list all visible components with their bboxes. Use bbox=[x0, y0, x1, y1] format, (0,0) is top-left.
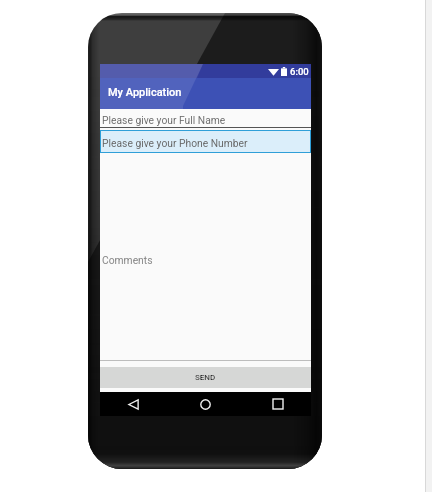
button[interactable]: Please give your Full Name bbox=[100, 109, 311, 128]
button[interactable]: Please give your Phone Number bbox=[100, 130, 311, 153]
button[interactable]: Comments bbox=[100, 153, 311, 360]
button[interactable]: Recent apps bbox=[264, 392, 292, 416]
staticText: My Application bbox=[108, 86, 182, 99]
button[interactable]: Back bbox=[119, 392, 147, 416]
staticText: 6:00 bbox=[290, 66, 309, 77]
button[interactable]: Home bbox=[191, 392, 219, 416]
staticText: SEND bbox=[195, 373, 216, 382]
button[interactable]: SEND bbox=[100, 367, 311, 388]
staticText: Please give your Phone Number bbox=[102, 137, 248, 149]
staticText: Please give your Full Name bbox=[102, 114, 226, 126]
staticText: Comments bbox=[102, 254, 153, 266]
